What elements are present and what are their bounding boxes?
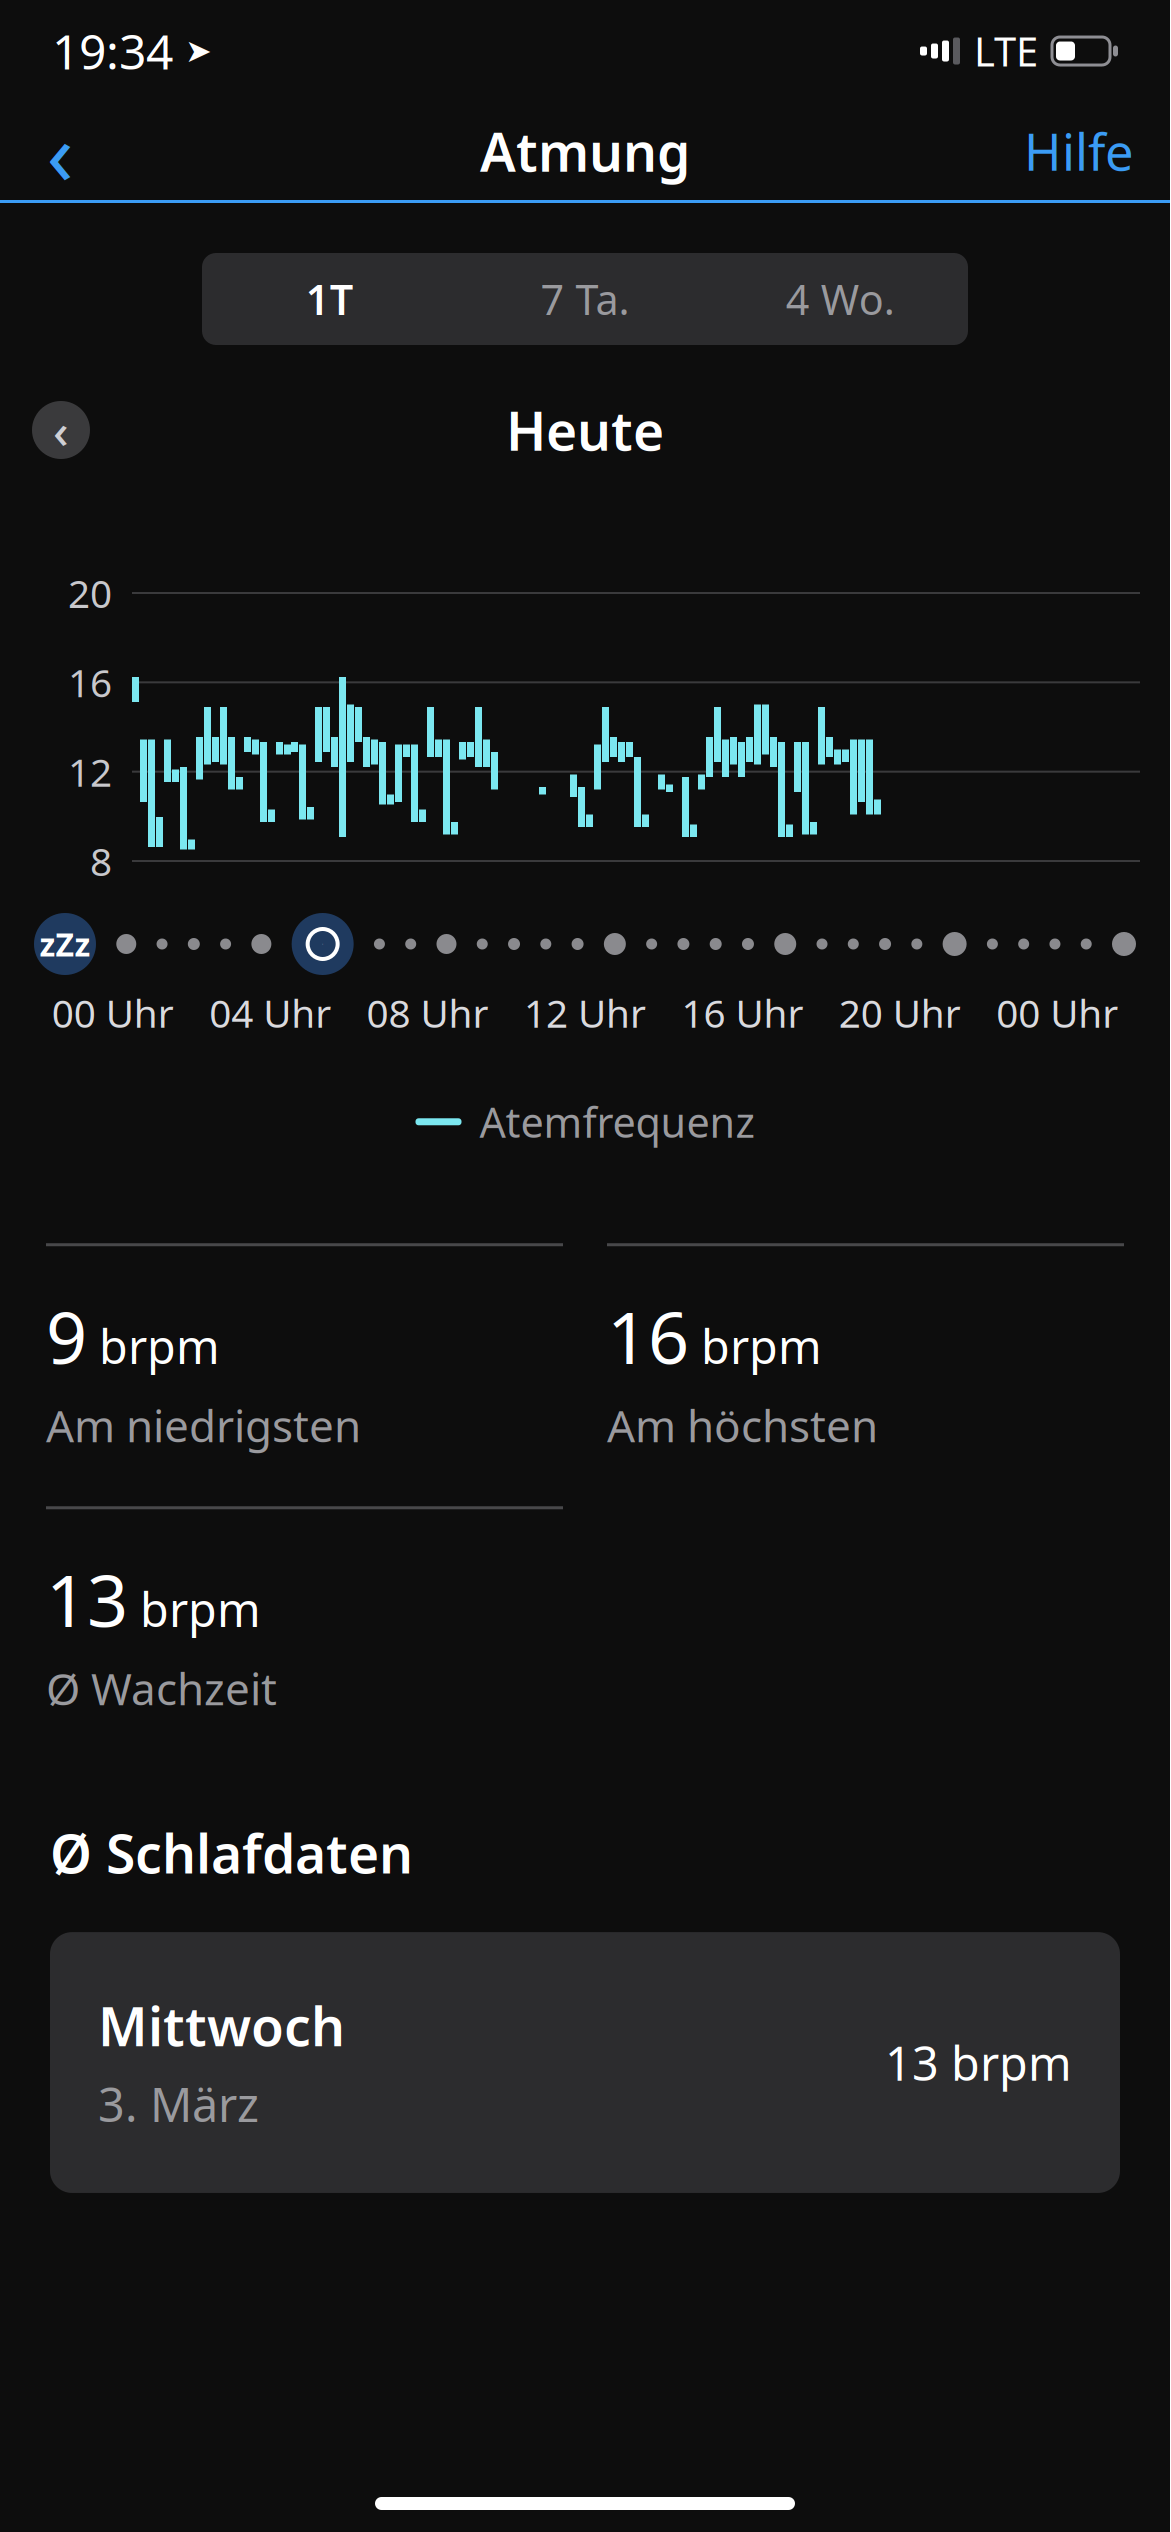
staticText: brpm [99, 1315, 220, 1377]
staticText: 13 [46, 1551, 128, 1647]
staticText: Ø Wachzeit [46, 1659, 277, 1717]
staticText: 19:34 [52, 19, 173, 83]
staticText: 00 Uhr [996, 987, 1118, 1038]
staticText: Atemfrequenz [479, 1094, 754, 1149]
staticText: brpm [701, 1315, 822, 1377]
staticText: ‹ [46, 93, 73, 209]
button[interactable]: Hilfe [1008, 105, 1150, 197]
button[interactable]: 4 Wo. [713, 253, 968, 345]
staticText: 16 Uhr [681, 987, 803, 1038]
staticText: 12 Uhr [524, 987, 646, 1038]
staticText: LTE [974, 24, 1038, 77]
staticText: 13 brpm [885, 2032, 1072, 2094]
staticText: ➤ [185, 33, 212, 69]
staticText: Heute [506, 395, 664, 465]
staticText: 9 [46, 1288, 87, 1384]
staticText: 20 Uhr [839, 987, 961, 1038]
button[interactable]: Mittwoch [50, 1932, 1120, 2193]
staticText: Ø Schlafdaten [50, 1817, 413, 1888]
staticText: 3. März [98, 2073, 259, 2135]
staticText: 04 Uhr [209, 987, 331, 1038]
staticText: 16 [68, 657, 112, 708]
staticText: 1T [306, 272, 354, 326]
staticText: Atmung [480, 116, 690, 186]
staticText: 00 Uhr [52, 987, 174, 1038]
button[interactable]: Vorheriger Tag [32, 401, 90, 459]
button[interactable]: 7 Ta. [457, 253, 713, 345]
staticText: 8 [90, 835, 112, 887]
staticText: Hilfe [1024, 117, 1134, 185]
staticText: 12 [68, 746, 112, 797]
button[interactable]: Zurück [20, 105, 100, 197]
staticText: Am höchsten [607, 1396, 878, 1454]
staticText: 20 [68, 567, 112, 619]
staticText: 7 Ta. [540, 272, 629, 326]
staticText: 16 [607, 1288, 689, 1384]
staticText: ⌂ [322, 943, 323, 945]
staticText: brpm [140, 1578, 261, 1640]
staticText: 08 Uhr [367, 987, 489, 1038]
staticText: zZz [39, 923, 90, 965]
staticText: Mittwoch [98, 1990, 345, 2061]
staticText: ‹ [53, 398, 69, 462]
button[interactable]: 1T [202, 253, 457, 345]
staticText: Am niedrigsten [46, 1396, 361, 1454]
staticText: 4 Wo. [786, 272, 895, 326]
